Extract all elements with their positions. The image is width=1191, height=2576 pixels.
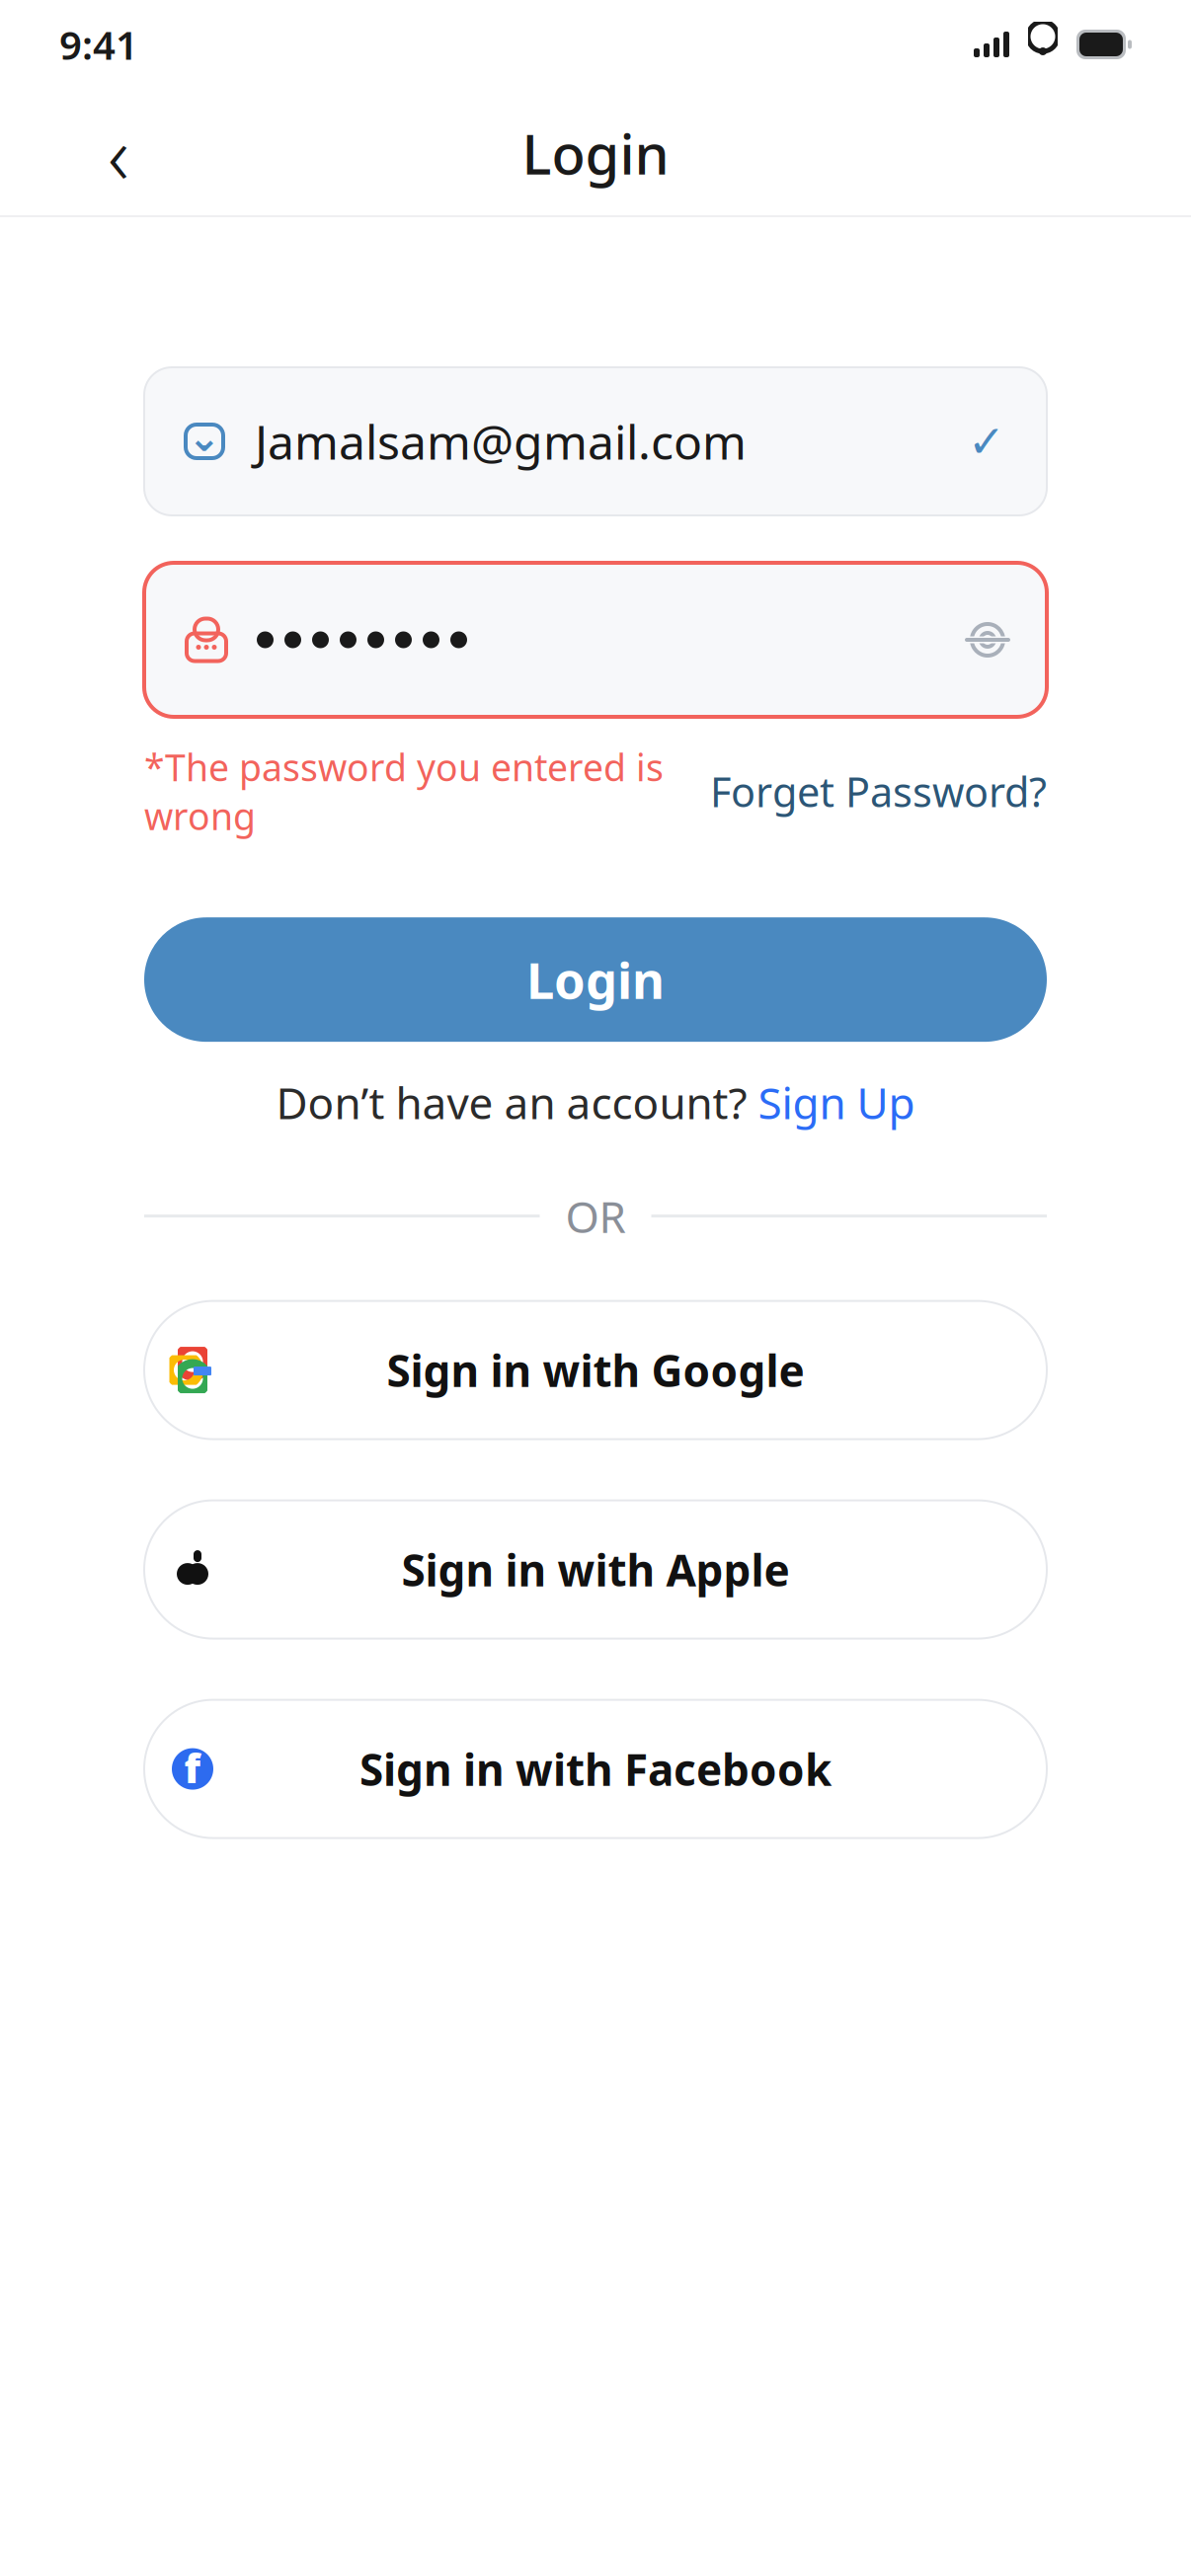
button[interactable]: Sign Up xyxy=(758,1073,915,1131)
button[interactable]: Sign in with Apple xyxy=(144,1500,1047,1639)
staticText: f xyxy=(184,1742,201,1794)
staticText: ✓ xyxy=(968,416,1005,467)
button[interactable]: Sign in with Google xyxy=(144,1301,1047,1439)
staticText: *The password you entered is wrong xyxy=(144,742,664,840)
button[interactable]: Forget Password? xyxy=(710,764,1047,819)
staticText: Login xyxy=(526,946,665,1013)
staticText: ⌄ xyxy=(188,415,221,460)
staticText: ‹ xyxy=(108,99,129,207)
staticText: Forget Password? xyxy=(710,764,1047,819)
staticText: Login xyxy=(522,116,669,190)
staticText: Don’t have an account? xyxy=(276,1073,758,1131)
staticText: Sign in with Facebook xyxy=(359,1740,832,1798)
staticText: OR xyxy=(565,1187,626,1245)
staticText: Sign in with Apple xyxy=(401,1541,790,1598)
button[interactable]: f xyxy=(144,1700,1047,1838)
staticText: Sign in with Google xyxy=(387,1341,804,1399)
staticText: Jamalsam@gmail.com xyxy=(255,410,747,473)
button[interactable]: Show password xyxy=(966,618,1047,662)
staticText: 9:41 xyxy=(59,18,138,71)
button[interactable]: Back xyxy=(79,114,158,193)
button[interactable]: Login xyxy=(144,917,1047,1042)
staticText: Sign Up xyxy=(758,1073,915,1131)
